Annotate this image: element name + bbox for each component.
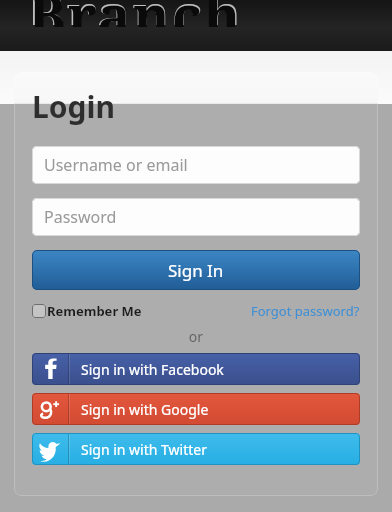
staticText: Login: [32, 86, 115, 127]
staticText: Branch: [26, 0, 243, 25]
button[interactable]: Username or email: [32, 146, 360, 184]
staticText: Branch: [28, 0, 243, 27]
button[interactable]: Password: [32, 198, 360, 236]
staticText: Sign in with Facebook: [81, 360, 224, 379]
button[interactable]: Remember Me: [32, 302, 142, 320]
staticText: Password: [44, 206, 117, 228]
button[interactable]: Forgot password?: [251, 302, 360, 320]
button[interactable]: Sign in with Facebook: [32, 353, 360, 385]
button[interactable]: Sign in with Twitter: [32, 433, 360, 465]
staticText: Sign in with Google: [81, 400, 209, 419]
staticText: or: [32, 327, 360, 346]
staticText: Forgot password?: [251, 302, 360, 320]
staticText: Sign In: [168, 259, 224, 282]
staticText: Remember Me: [47, 302, 142, 320]
button[interactable]: Sign in with Google: [32, 393, 360, 425]
staticText: Sign in with Twitter: [81, 440, 207, 459]
staticText: Username or email: [44, 154, 188, 176]
button[interactable]: Sign In: [32, 250, 360, 290]
